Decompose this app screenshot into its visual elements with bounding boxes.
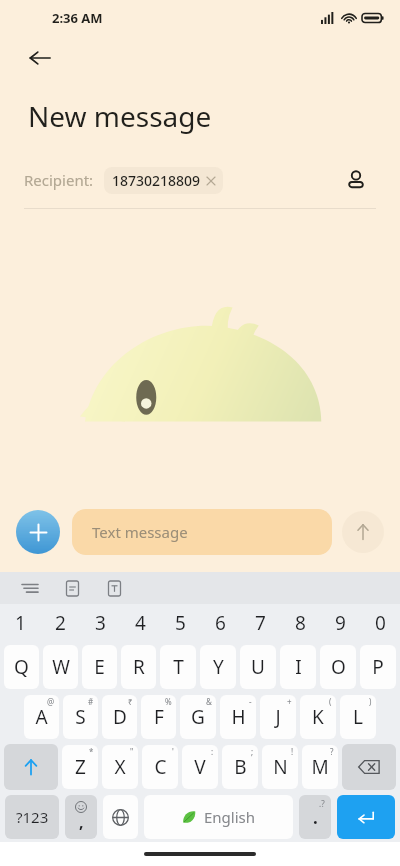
staticText: ( (329, 696, 332, 707)
button[interactable]: .? (299, 795, 331, 839)
button[interactable]: H (220, 695, 256, 739)
button[interactable]: 0 (360, 604, 400, 642)
staticText: 6 (215, 610, 226, 636)
button[interactable]: Change language (103, 795, 138, 839)
staticText: Text message (92, 522, 188, 542)
button[interactable]: 8 (280, 604, 320, 642)
button[interactable]: 2 (40, 604, 80, 642)
staticText: T (173, 654, 184, 680)
staticText: # (88, 696, 94, 707)
button[interactable]: B (222, 745, 258, 789)
button[interactable]: X (102, 745, 138, 789)
staticText: V (194, 754, 206, 780)
staticText: ?123 (16, 807, 49, 827)
button[interactable]: C (142, 745, 178, 789)
button[interactable]: 18730218809 (104, 167, 223, 194)
staticText: English (204, 807, 256, 827)
staticText: , (79, 811, 84, 833)
button[interactable]: J (260, 695, 296, 739)
button[interactable]: English (144, 795, 293, 839)
button[interactable]: 1 (0, 604, 40, 642)
button[interactable]: P (360, 645, 396, 689)
staticText: J (275, 704, 281, 730)
staticText: 5 (175, 610, 186, 636)
staticText: % (165, 696, 172, 707)
button[interactable]: Add attachment (16, 510, 60, 554)
button[interactable]: I (280, 645, 316, 689)
staticText: Y (213, 654, 224, 680)
button[interactable]: Send (342, 511, 384, 553)
staticText: R (133, 654, 145, 680)
staticText: ! (291, 746, 294, 757)
button[interactable]: Back (18, 36, 62, 80)
button[interactable]: 6 (200, 604, 240, 642)
staticText: : (211, 746, 214, 757)
button[interactable]: W (43, 645, 78, 689)
button[interactable]: 3 (80, 604, 120, 642)
staticText: 3 (95, 610, 106, 636)
staticText: 18730218809 (112, 171, 201, 190)
staticText: L (353, 704, 363, 730)
button[interactable]: V (182, 745, 218, 789)
button[interactable]: Text message (72, 509, 332, 555)
button[interactable]: 5 (160, 604, 200, 642)
button[interactable]: 7 (240, 604, 280, 642)
staticText: Q (14, 654, 29, 680)
button[interactable]: F (141, 695, 176, 739)
button[interactable]: A (24, 695, 59, 739)
staticText: M (311, 754, 329, 780)
staticText: ' (172, 746, 174, 757)
staticText: I (295, 654, 302, 680)
button[interactable]: O (320, 645, 356, 689)
button[interactable]: Contacts (336, 160, 376, 200)
button[interactable]: 9 (320, 604, 360, 642)
staticText: 0 (375, 610, 386, 636)
staticText: & (206, 696, 212, 707)
staticText: H (231, 704, 246, 730)
staticText: Recipient: (24, 170, 94, 190)
staticText: ) (369, 696, 372, 707)
staticText: N (273, 754, 288, 780)
button[interactable]: N (262, 745, 298, 789)
button[interactable]: L (340, 695, 376, 739)
staticText: F (154, 704, 164, 730)
staticText: 8 (295, 610, 306, 636)
button[interactable]: Q (4, 645, 39, 689)
button[interactable]: D (102, 695, 137, 739)
button[interactable]: Text style (100, 574, 128, 602)
button[interactable]: U (240, 645, 276, 689)
staticText: 9 (335, 610, 346, 636)
button[interactable]: G (180, 695, 216, 739)
button[interactable]: S (63, 695, 98, 739)
button[interactable]: Emoji and comma (65, 795, 97, 839)
button[interactable]: E (82, 645, 117, 689)
button[interactable]: ?123 (5, 795, 59, 839)
button[interactable]: Backspace (342, 744, 396, 790)
button[interactable]: K (300, 695, 336, 739)
staticText: . (313, 806, 318, 829)
button[interactable]: Shift (4, 744, 58, 790)
staticText: ? (330, 746, 334, 757)
button[interactable]: R (121, 645, 156, 689)
button[interactable]: Z (62, 745, 98, 789)
staticText: K (312, 704, 324, 730)
staticText: C (154, 754, 167, 780)
button[interactable]: Enter (337, 795, 395, 839)
staticText: ₹ (128, 696, 133, 707)
staticText: W (52, 654, 70, 680)
staticText: G (191, 704, 205, 730)
staticText: D (113, 704, 127, 730)
button[interactable]: T (160, 645, 196, 689)
button[interactable]: 4 (120, 604, 160, 642)
button[interactable]: Clipboard (58, 574, 86, 602)
staticText: B (234, 754, 247, 780)
staticText: A (35, 704, 48, 730)
staticText: 1 (15, 610, 26, 636)
staticText: O (331, 654, 346, 680)
button[interactable]: M (302, 745, 338, 789)
staticText: E (94, 654, 105, 680)
staticText: Z (75, 754, 86, 780)
button[interactable]: Y (200, 645, 236, 689)
staticText: ; (251, 746, 254, 757)
button[interactable]: Menu (16, 574, 44, 602)
